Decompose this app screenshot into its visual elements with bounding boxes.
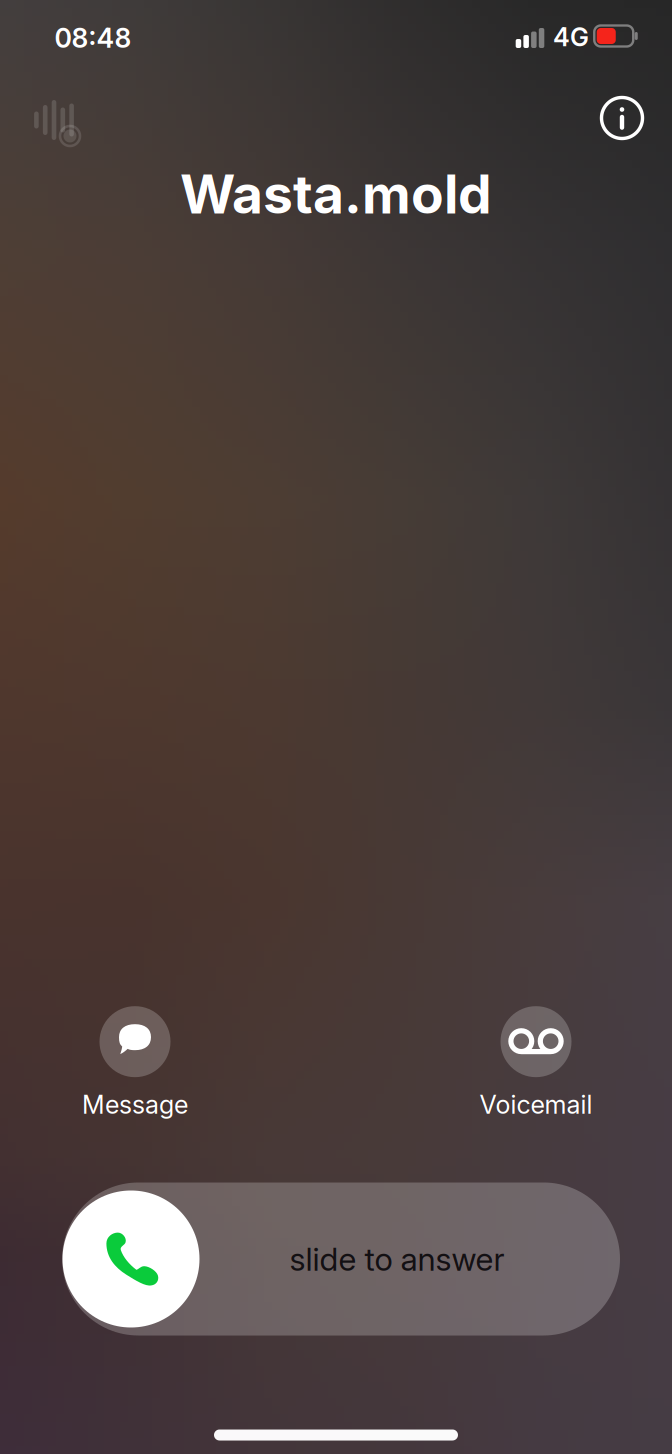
button[interactable]: slide to answer	[62, 1182, 620, 1335]
button[interactable]: Voicemail	[441, 1004, 631, 1122]
button[interactable]: Message	[40, 1004, 230, 1122]
staticText: slide to answer	[289, 1240, 504, 1278]
staticText: Wasta.mold	[180, 162, 492, 226]
staticText: 4G	[553, 22, 589, 52]
staticText: 08:48	[54, 22, 131, 54]
staticText: Voicemail	[479, 1089, 592, 1120]
button[interactable]: Call info	[594, 90, 650, 146]
staticText: Message	[82, 1089, 188, 1120]
